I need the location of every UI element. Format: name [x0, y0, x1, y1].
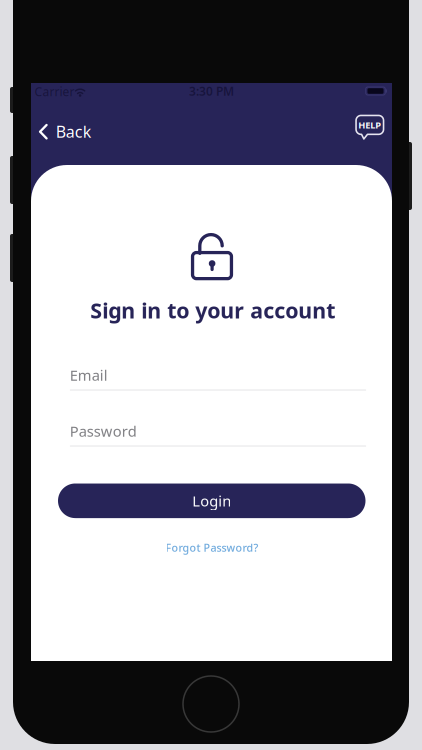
button[interactable]: Password: [70, 423, 366, 453]
staticText: Forgot Password?: [165, 540, 258, 555]
button[interactable]: Back: [30, 112, 106, 151]
staticText: Login: [192, 491, 231, 511]
staticText: HELP: [358, 119, 381, 131]
staticText: Sign in to your account: [90, 296, 335, 324]
staticText: Carrier: [34, 83, 74, 99]
staticText: 3:30 PM: [189, 83, 234, 99]
staticText: Back: [56, 121, 92, 142]
staticText: Email: [70, 365, 108, 385]
button[interactable]: Email: [70, 367, 366, 397]
button[interactable]: Forgot Password?: [162, 537, 261, 558]
button[interactable]: Login: [58, 483, 365, 518]
staticText: Password: [70, 421, 137, 441]
button[interactable]: Help: [348, 108, 393, 147]
